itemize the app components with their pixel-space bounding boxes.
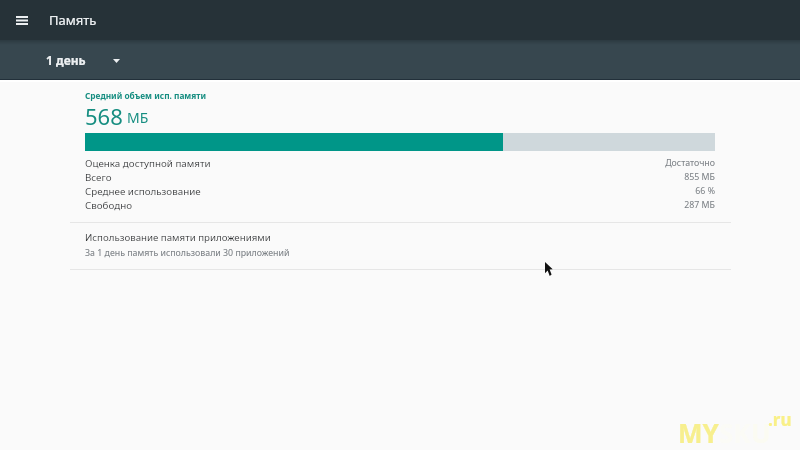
button[interactable]: 1 день [34,52,134,68]
staticText: 855 МБ [120,171,715,183]
staticText: Память [49,11,97,29]
button[interactable]: Всего [85,170,715,184]
button[interactable]: Свободно [85,198,715,212]
staticText: Средний объем исп. памяти [85,90,207,101]
staticText: .ru [768,408,792,431]
button[interactable]: Среднее использование [85,184,715,198]
staticText: U [751,415,771,450]
staticText: Свободно [85,199,132,212]
staticText: 66 % [209,185,715,197]
staticText: Использование памяти приложениями [85,231,271,244]
button[interactable]: Использование памяти приложениями [0,221,800,269]
staticText: За 1 день память использовали 30 приложе… [85,247,290,259]
button[interactable]: Оценка доступной памяти [85,156,715,170]
staticText: MY [678,415,719,450]
staticText: МБ [127,108,149,127]
button[interactable]: Open navigation menu [2,0,42,40]
staticText: Оценка доступной памяти [85,157,211,170]
staticText: 1 день [46,52,86,68]
staticText: 287 МБ [140,199,715,211]
staticText: Всего [85,171,112,184]
staticText: Среднее использование [85,185,201,198]
staticText: Достаточно [219,157,715,169]
staticText: 568 [85,101,123,131]
